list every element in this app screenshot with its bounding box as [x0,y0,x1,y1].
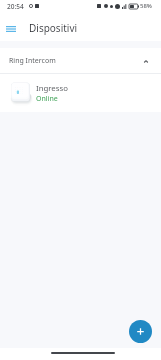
staticText: Online [36,94,58,104]
staticText: Ring Intercom [9,56,56,66]
staticText: 20:54 [7,2,24,11]
staticText: Dispositivi [29,21,78,35]
staticText: Ingresso [36,83,68,94]
button[interactable]: Add device [129,320,152,343]
staticText: 58% [140,2,152,10]
button[interactable]: Open navigation menu [2,20,19,37]
button[interactable]: Ingresso [0,74,161,112]
button[interactable]: Ring Intercom [0,48,161,73]
